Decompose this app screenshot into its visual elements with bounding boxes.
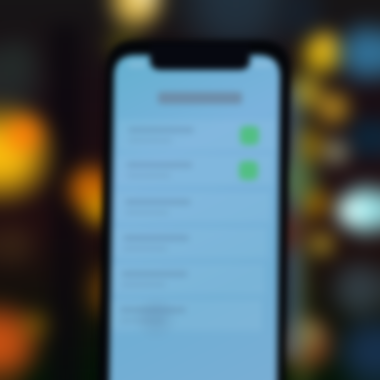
button[interactable]: Enable notifications [240, 126, 259, 145]
button[interactable]: Enable sounds [239, 161, 258, 180]
